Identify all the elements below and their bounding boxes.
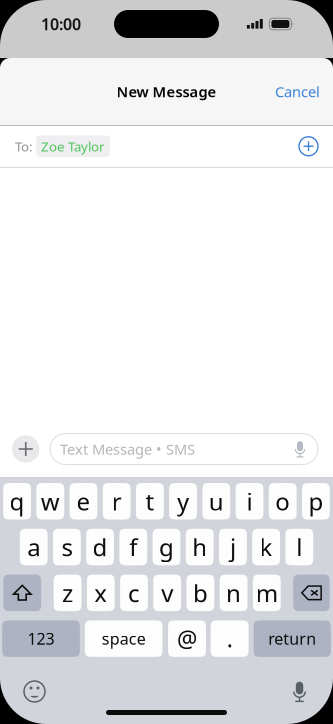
button[interactable]: r [103, 483, 131, 519]
staticText: d [93, 531, 108, 563]
staticText: Cancel [275, 82, 320, 101]
button[interactable]: x [87, 575, 115, 611]
button[interactable]: j [219, 529, 247, 565]
staticText: q [10, 485, 25, 517]
staticText: b [193, 577, 208, 609]
staticText: u [209, 485, 224, 517]
staticText: g [159, 531, 174, 563]
button[interactable]: s [53, 529, 81, 565]
staticText: return [268, 628, 316, 649]
staticText: c [128, 577, 140, 609]
staticText: r [112, 485, 122, 517]
staticText: space [102, 628, 146, 649]
button[interactable]: y [169, 483, 197, 519]
staticText: i [246, 485, 252, 517]
button[interactable]: t [136, 483, 164, 519]
button[interactable]: u [202, 483, 230, 519]
button[interactable]: @ [168, 620, 206, 657]
staticText: m [256, 577, 278, 609]
staticText: . [227, 624, 233, 654]
button[interactable]: . [211, 620, 249, 657]
button[interactable]: k [252, 529, 280, 565]
staticText: t [145, 485, 154, 517]
staticText: k [260, 531, 273, 563]
button[interactable]: c [120, 575, 148, 611]
button[interactable]: Add attachment or app [0, 435, 39, 463]
staticText: y [177, 485, 189, 517]
button[interactable]: l [285, 529, 313, 565]
staticText: @ [177, 624, 197, 654]
button[interactable]: return [254, 620, 331, 657]
button[interactable]: i [236, 483, 263, 519]
staticText: p [308, 485, 323, 517]
button[interactable]: g [153, 529, 180, 565]
staticText: 10:00 [41, 13, 81, 35]
button[interactable]: Emoji keyboard [0, 673, 45, 710]
staticText: w [41, 485, 60, 517]
staticText: s [61, 531, 72, 563]
staticText: n [226, 577, 241, 609]
button[interactable]: 123 [2, 620, 80, 657]
button[interactable]: f [119, 529, 147, 565]
button[interactable]: p [302, 483, 330, 519]
staticText: Text Message • SMS [60, 439, 195, 459]
button[interactable]: o [269, 483, 297, 519]
button[interactable]: e [70, 483, 97, 519]
button[interactable]: Dictate [292, 675, 333, 708]
staticText: f [129, 531, 137, 563]
staticText: x [94, 577, 107, 609]
staticText: a [27, 531, 40, 563]
button[interactable]: a [20, 529, 48, 565]
staticText: v [161, 577, 173, 609]
staticText: e [76, 485, 90, 517]
button[interactable]: d [86, 529, 114, 565]
staticText: Zoe Taylor [41, 137, 105, 155]
button[interactable]: v [153, 575, 181, 611]
button[interactable]: w [36, 483, 64, 519]
button[interactable]: space [85, 620, 162, 657]
button[interactable]: n [220, 575, 247, 611]
button[interactable]: Cancel [262, 70, 333, 113]
button[interactable]: h [186, 529, 214, 565]
button[interactable]: q [3, 483, 31, 519]
staticText: To: [15, 137, 33, 155]
staticText: l [296, 531, 302, 563]
staticText: z [62, 577, 73, 609]
staticText: j [230, 531, 236, 563]
staticText: o [275, 485, 290, 517]
button[interactable]: z [54, 575, 81, 611]
staticText: h [192, 531, 207, 563]
button[interactable]: m [253, 575, 281, 611]
button[interactable]: Delete [293, 575, 330, 611]
button[interactable]: Shift [3, 575, 41, 611]
staticText: 123 [27, 628, 54, 649]
staticText: New Message [116, 82, 216, 101]
button[interactable]: b [186, 575, 214, 611]
button[interactable]: Add recipient [299, 127, 333, 166]
